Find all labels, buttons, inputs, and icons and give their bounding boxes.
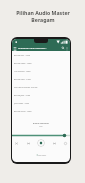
staticText: Burung Cidrek - Audio <box>14 62 32 64</box>
staticText: Kicau Burung Ciblek - Burung <box>14 86 38 88</box>
button[interactable]: Burung Cililin - Audio <box>12 75 70 83</box>
button[interactable]: Repeat <box>63 141 68 146</box>
staticText: Masteran Kicau Burung... <box>18 46 47 49</box>
button[interactable]: Burung Kenari - Audio <box>12 107 70 115</box>
button[interactable]: Previous <box>26 141 31 146</box>
button[interactable] <box>12 134 70 137</box>
button[interactable]: Burung Jalak - Audio <box>12 91 70 99</box>
button[interactable]: Burung Pleci - Audio <box>12 51 70 59</box>
staticText: Burung Cililin - Audio <box>14 78 31 80</box>
staticText: Arsi Kenbang - Audio <box>14 70 31 72</box>
staticText: Burung Jalak - Audio <box>14 94 31 96</box>
staticText: Burung Campuran <box>33 122 49 124</box>
staticText: Jenis Ciblek - Audio <box>14 102 30 104</box>
staticText: Burung Pleci - Audio <box>14 54 31 56</box>
staticText: Auto <box>39 125 43 127</box>
button[interactable]: Play <box>37 139 45 147</box>
button[interactable]: Navigate up <box>13 46 17 50</box>
button[interactable]: Shuffle <box>14 141 19 146</box>
button[interactable]: Burung Cidrek - Audio <box>12 59 70 67</box>
button[interactable]: Search <box>61 46 65 50</box>
button[interactable]: Kicau Burung Ciblek - Burung <box>12 83 70 91</box>
staticText: Stop Timer <box>38 154 47 156</box>
button[interactable]: Arsi Kenbang - Audio <box>12 67 70 75</box>
button[interactable]: Jenis Ciblek - Audio <box>12 99 70 107</box>
button[interactable]: Next <box>52 141 57 146</box>
button[interactable]: Stop Timer <box>36 154 47 156</box>
staticText: Beragam <box>31 16 55 23</box>
button[interactable]: More options <box>65 46 69 50</box>
staticText: Pilihan Audio Master <box>16 9 70 16</box>
button[interactable]: Navigate up <box>12 44 70 51</box>
staticText: Burung Kenari - Audio <box>14 110 32 112</box>
